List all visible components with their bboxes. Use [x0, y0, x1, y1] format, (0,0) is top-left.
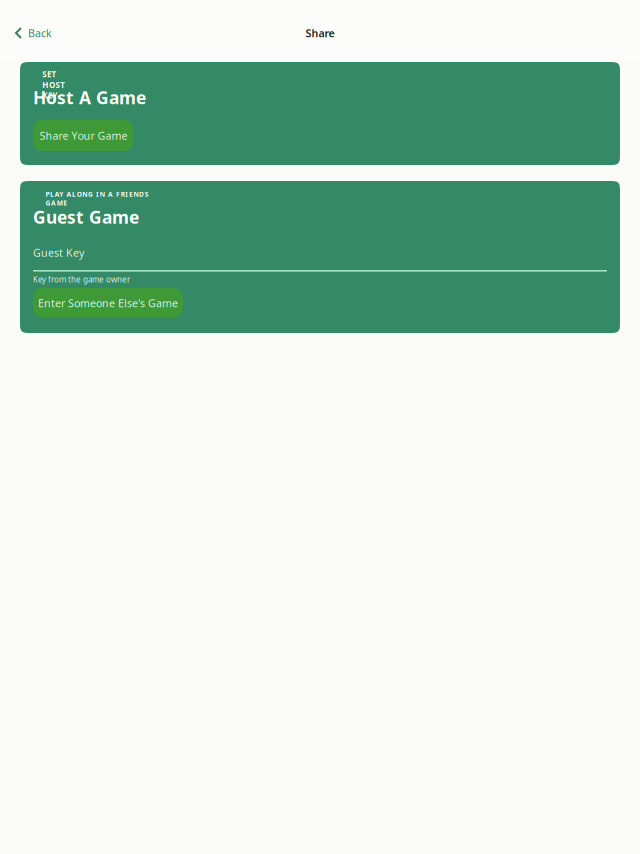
- staticText: Key from the game owner: [33, 274, 130, 285]
- staticText: Back: [28, 26, 52, 40]
- staticText: Share: [305, 26, 334, 40]
- staticText: PLAY ALONG IN A FRIENDS GAME: [45, 190, 149, 207]
- staticText: SET HOST KEY: [42, 69, 83, 90]
- staticText: Host A Game: [33, 86, 146, 109]
- staticText: Guest Game: [33, 205, 139, 228]
- staticText: Guest Key: [33, 245, 84, 260]
- staticText: Enter Someone Else's Game: [38, 296, 178, 310]
- button[interactable]: Enter Someone Else's Game: [33, 288, 183, 318]
- button[interactable]: Back: [0, 22, 64, 44]
- staticText: Share Your Game: [39, 128, 127, 143]
- button[interactable]: Share Your Game: [33, 120, 134, 151]
